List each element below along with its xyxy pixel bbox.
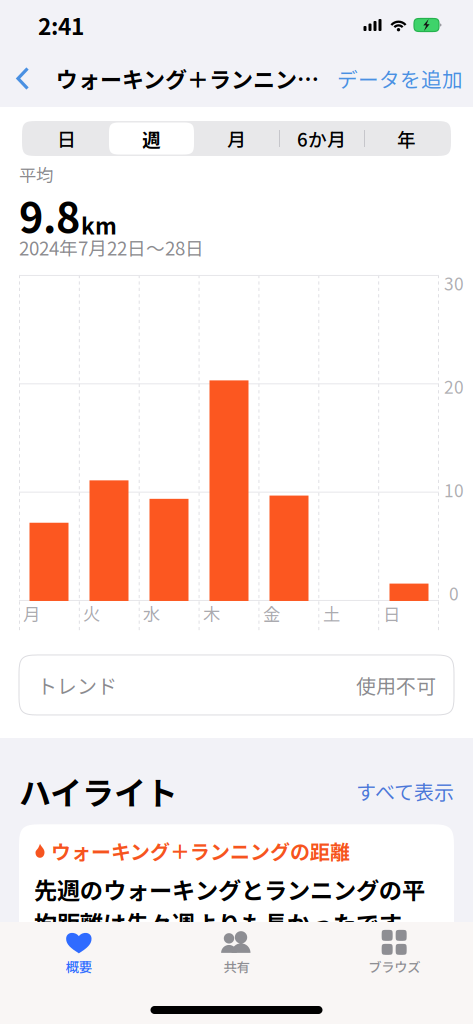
staticText: すべて表示 bbox=[356, 777, 454, 806]
staticText: 年 bbox=[397, 125, 416, 152]
staticText: 木 bbox=[203, 601, 220, 626]
staticText: 金 bbox=[263, 601, 280, 626]
button[interactable]: 6か月 bbox=[279, 122, 364, 154]
button[interactable]: データを追加 bbox=[329, 55, 471, 101]
staticText: 0 bbox=[449, 580, 459, 605]
button[interactable]: ウォーキング＋ランニングの距離 bbox=[19, 824, 454, 955]
button[interactable]: すべて表示 bbox=[356, 777, 454, 806]
staticText: 火 bbox=[83, 601, 100, 626]
staticText: km bbox=[81, 208, 117, 241]
button[interactable]: 日 bbox=[24, 122, 109, 154]
staticText: ウォーキング＋ランニング… bbox=[56, 63, 327, 94]
staticText: ウォーキング＋ランニングの距離 bbox=[51, 836, 350, 865]
staticText: 2024年7月22日〜28日 bbox=[19, 234, 204, 261]
button[interactable]: 戻る bbox=[0, 57, 44, 100]
staticText: トレンド bbox=[37, 670, 117, 699]
staticText: ハイライト bbox=[19, 768, 178, 814]
staticText: 10 bbox=[444, 477, 464, 502]
staticText: 月 bbox=[23, 601, 40, 626]
staticText: 週 bbox=[142, 125, 161, 152]
staticText: 日 bbox=[383, 601, 400, 626]
button[interactable]: ブラウズ bbox=[315, 928, 473, 978]
button[interactable]: 月 bbox=[194, 122, 279, 154]
staticText: 先週のウォーキングとランニングの平均距離は先々週よりも長かったです。 bbox=[34, 872, 425, 939]
staticText: 6か月 bbox=[297, 125, 346, 152]
staticText: データを追加 bbox=[337, 63, 463, 93]
staticText: 30 bbox=[444, 270, 464, 295]
staticText: ブラウズ bbox=[368, 957, 420, 976]
staticText: 水 bbox=[143, 601, 160, 626]
staticText: 月 bbox=[227, 125, 246, 152]
button[interactable]: 共有 bbox=[158, 928, 315, 978]
staticText: 概要 bbox=[66, 957, 92, 976]
button[interactable]: 週 bbox=[109, 122, 194, 154]
button[interactable]: 年 bbox=[364, 122, 449, 154]
staticText: 使用不可 bbox=[356, 670, 436, 699]
staticText: 2:41 bbox=[38, 9, 84, 41]
staticText: 土 bbox=[323, 601, 340, 626]
staticText: 20 bbox=[444, 374, 464, 399]
staticText: 平均 bbox=[19, 162, 53, 187]
button[interactable]: 概要 bbox=[0, 928, 158, 978]
staticText: 共有 bbox=[223, 957, 249, 976]
staticText: 9.8 bbox=[19, 185, 80, 245]
staticText: 日 bbox=[57, 125, 76, 152]
